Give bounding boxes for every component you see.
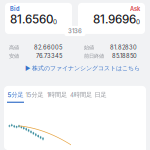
staticText: 76.73345 — [36, 52, 62, 59]
button[interactable]: ▶ 株式のファイナンシングコストはこちら — [0, 59, 150, 86]
staticText: 81.6560 — [10, 12, 53, 26]
staticText: 日足 — [94, 91, 106, 99]
staticText: Ask — [130, 5, 140, 12]
button[interactable]: Bid — [5, 3, 72, 34]
staticText: 4時間足 — [70, 91, 92, 99]
staticText: 15分足 — [25, 91, 43, 99]
staticText: 5分足 — [7, 91, 23, 99]
staticText: Bid — [10, 5, 20, 12]
button[interactable]: 5分足 — [7, 86, 24, 103]
staticText: 81.9696 — [93, 12, 136, 26]
staticText: 0 — [136, 18, 140, 26]
staticText: 0 — [53, 18, 57, 26]
staticText: 82.66005 — [34, 44, 62, 51]
staticText: 安値 — [9, 53, 19, 59]
button[interactable]: 4時間足 — [69, 86, 93, 103]
staticText: 85.18850 — [112, 52, 137, 59]
button[interactable]: 日足 — [93, 86, 108, 103]
button[interactable]: 15分足 — [24, 86, 45, 103]
staticText: 高値 — [9, 44, 19, 51]
staticText: ▶ 株式のファイナンシングコストはこちら — [25, 64, 140, 72]
staticText: 1時間足 — [47, 91, 67, 99]
staticText: 81.82830 — [110, 44, 137, 51]
staticText: 前日終値 — [84, 53, 104, 59]
button[interactable]: Ask — [78, 3, 145, 34]
button[interactable]: 1時間足 — [45, 86, 69, 103]
staticText: 3136 — [68, 27, 82, 35]
staticText: 始値 — [84, 44, 94, 51]
